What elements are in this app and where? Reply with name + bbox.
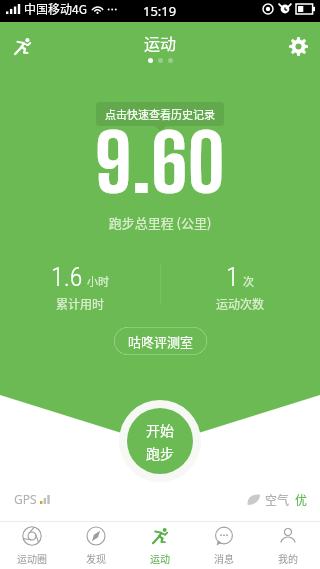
staticText: 点击快速查看历史记录 — [105, 106, 215, 122]
staticText: 运动圈 — [17, 551, 47, 565]
staticText: 累计用时 — [56, 295, 105, 312]
staticText: 开始 — [146, 420, 174, 440]
staticText: GPS — [14, 491, 37, 507]
button[interactable]: Settings — [282, 30, 314, 62]
button[interactable]: 发现 — [64, 522, 128, 569]
button[interactable]: 1 — [160, 262, 320, 312]
staticText: 中国移动4G — [24, 0, 87, 17]
button[interactable]: 点击快速查看历史记录 — [96, 102, 224, 131]
staticText: 优 — [295, 491, 308, 508]
button[interactable]: 运动圈 — [0, 522, 64, 569]
button[interactable]: 运动 — [128, 522, 192, 569]
staticText: 1 — [226, 262, 239, 292]
staticText: 空气 — [265, 491, 290, 508]
button[interactable]: 咕咚评测室 — [114, 327, 207, 355]
button[interactable]: 我的 — [256, 522, 320, 569]
staticText: 跑步总里程 (公里) — [0, 213, 320, 232]
staticText: 1.6 — [51, 262, 83, 292]
staticText: KK下载 — [203, 512, 308, 557]
staticText: 运动 — [144, 31, 177, 54]
button[interactable]: 1.6 — [0, 262, 160, 312]
staticText: 运动 — [150, 551, 170, 565]
staticText: 我的 — [278, 551, 298, 565]
button[interactable]: GPS — [14, 491, 50, 507]
button[interactable]: 开始 — [127, 408, 193, 474]
staticText: 跑步 — [146, 443, 174, 463]
button[interactable]: 空气 — [247, 491, 308, 508]
staticText: 消息 — [214, 551, 234, 565]
button[interactable]: Running record — [6, 30, 38, 62]
staticText: 小时 — [87, 273, 109, 289]
staticText: 次 — [243, 273, 254, 289]
staticText: 运动次数 — [216, 295, 265, 312]
staticText: www.kkx.net — [200, 545, 302, 568]
staticText: 发现 — [86, 551, 106, 565]
button[interactable]: 消息 — [192, 522, 256, 569]
staticText: 15:19 — [143, 2, 177, 20]
staticText: 9.60 — [0, 115, 320, 210]
staticText: 咕咚评测室 — [128, 332, 194, 351]
